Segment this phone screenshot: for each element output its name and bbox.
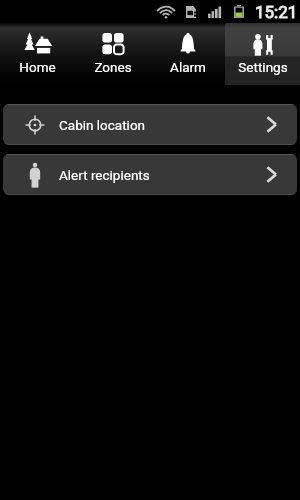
staticText: Zones (94, 59, 132, 75)
button[interactable]: Cabin location (3, 104, 297, 145)
staticText: Cabin location (59, 117, 146, 133)
button[interactable]: Alarm (150, 23, 225, 85)
staticText: Home (19, 59, 56, 75)
staticText: Settings (238, 59, 288, 75)
staticText: Alarm (170, 59, 206, 75)
button[interactable]: Settings (225, 23, 300, 85)
button[interactable]: Alert recipients (3, 154, 297, 195)
staticText: Alert recipients (59, 167, 150, 183)
button[interactable]: Home (0, 23, 75, 85)
staticText: 15:21 (255, 2, 298, 22)
button[interactable]: Zones (75, 23, 150, 85)
